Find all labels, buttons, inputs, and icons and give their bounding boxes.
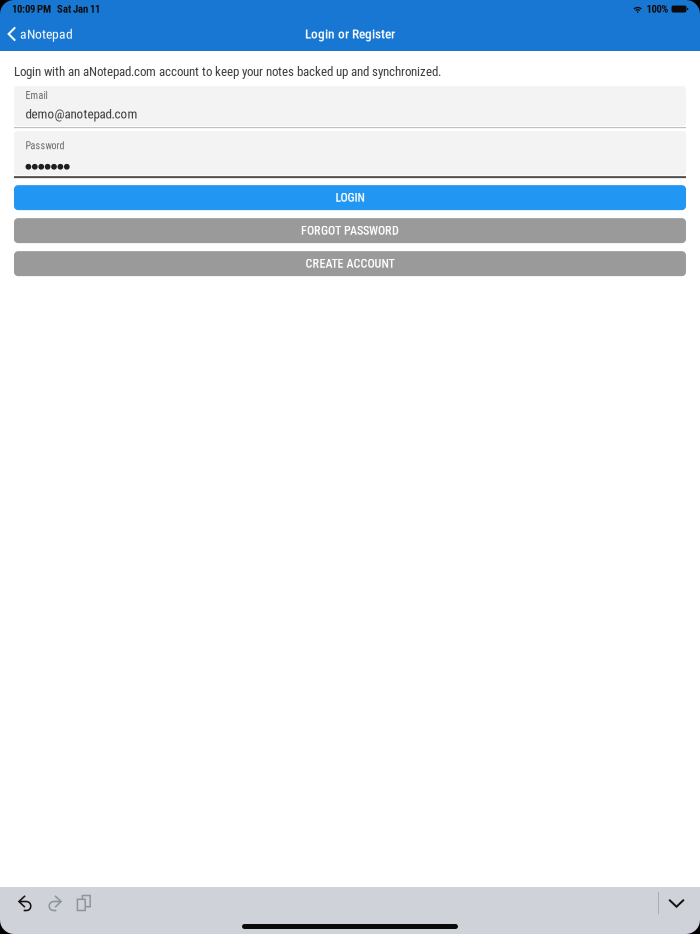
button[interactable]: aNotepad bbox=[0, 19, 82, 49]
staticText: Login with an aNotepad.com account to ke… bbox=[14, 64, 441, 79]
staticText: Password bbox=[25, 140, 64, 152]
staticText: 100% bbox=[646, 3, 668, 15]
button[interactable]: Paste bbox=[69, 891, 99, 915]
staticText: Email bbox=[25, 90, 47, 101]
button[interactable]: LOGIN bbox=[14, 185, 686, 210]
button[interactable]: Redo bbox=[41, 891, 69, 915]
staticText: aNotepad bbox=[20, 26, 73, 42]
staticText: 10:09 PM Sat Jan 11 bbox=[12, 3, 100, 15]
button[interactable]: Dismiss keyboard bbox=[659, 891, 694, 915]
staticText: LOGIN bbox=[335, 191, 364, 205]
button[interactable]: Undo bbox=[9, 891, 41, 915]
staticText: CREATE ACCOUNT bbox=[305, 257, 394, 271]
staticText: Login or Register bbox=[305, 26, 395, 42]
button[interactable]: FORGOT PASSWORD bbox=[14, 218, 686, 243]
staticText: demo@anotepad.com bbox=[25, 106, 137, 122]
staticText: FORGOT PASSWORD bbox=[301, 224, 399, 238]
button[interactable]: CREATE ACCOUNT bbox=[14, 251, 686, 276]
